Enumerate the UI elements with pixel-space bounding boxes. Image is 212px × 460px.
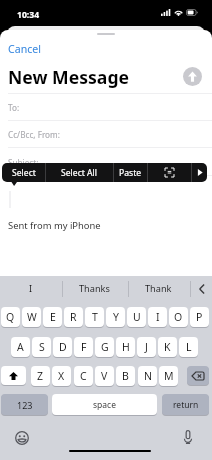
button[interactable]: Q — [1, 307, 20, 327]
staticText: Cancel — [8, 42, 41, 56]
button[interactable]: Thanks — [62, 277, 127, 299]
button[interactable]: B — [116, 366, 135, 386]
button[interactable]: T — [85, 307, 104, 327]
button[interactable]: Emoji — [13, 429, 31, 447]
button[interactable]: 123 — [1, 394, 48, 415]
staticText: X — [58, 369, 65, 383]
button[interactable]: A — [11, 337, 30, 357]
button[interactable]: Z — [31, 366, 50, 386]
staticText: Cc/Bcc, From: — [8, 129, 60, 140]
button[interactable]: S — [32, 337, 51, 357]
staticText: 123 — [17, 399, 33, 411]
staticText: U — [133, 310, 141, 324]
button[interactable]: I — [148, 307, 167, 327]
button[interactable]: V — [95, 366, 114, 386]
button[interactable]: I — [0, 277, 62, 299]
button[interactable]: C — [74, 366, 93, 386]
staticText: T — [92, 310, 98, 324]
button[interactable]: R — [64, 307, 83, 327]
staticText: Paste — [119, 167, 142, 179]
button[interactable]: F — [74, 337, 93, 357]
staticText: M — [164, 369, 174, 383]
staticText: Q — [6, 310, 15, 324]
button[interactable]: Y — [106, 307, 125, 327]
staticText: L — [186, 340, 192, 354]
button[interactable]: E — [43, 307, 62, 327]
staticText: Select All — [61, 167, 98, 179]
staticText: Subject: — [8, 157, 39, 168]
staticText: O — [174, 310, 183, 324]
staticText: New Message — [8, 65, 130, 89]
button[interactable]: K — [158, 337, 177, 357]
button[interactable]: Select — [2, 163, 45, 182]
staticText: C — [80, 369, 87, 383]
button[interactable]: N — [138, 366, 157, 386]
staticText: N — [144, 369, 152, 383]
staticText: G — [101, 340, 109, 354]
button[interactable]: Hide predictions — [191, 278, 212, 300]
button[interactable]: D — [53, 337, 72, 357]
button[interactable]: Subject: — [0, 148, 212, 176]
button[interactable]: O — [169, 307, 188, 327]
staticText: K — [164, 340, 171, 354]
staticText: I — [156, 310, 160, 324]
button[interactable]: Send — [183, 67, 202, 86]
button[interactable]: Backspace — [187, 366, 209, 385]
button[interactable]: U — [127, 307, 146, 327]
staticText: Z — [37, 369, 44, 383]
button[interactable]: W — [22, 307, 41, 327]
button[interactable]: M — [159, 366, 178, 386]
button[interactable]: To: — [0, 93, 212, 121]
button[interactable]: Dictation — [179, 428, 197, 446]
button[interactable]: Cancel — [8, 42, 41, 56]
staticText: E — [50, 310, 56, 324]
staticText: R — [70, 310, 77, 324]
button[interactable]: return — [162, 394, 209, 415]
staticText: W — [27, 310, 37, 324]
staticText: To: — [8, 102, 20, 113]
button[interactable]: H — [116, 337, 135, 357]
button[interactable]: space — [52, 394, 157, 415]
staticText: Sent from my iPhone — [8, 219, 101, 232]
button[interactable]: Scan text — [148, 163, 191, 182]
button[interactable]: Paste — [114, 163, 147, 182]
staticText: A — [17, 340, 24, 354]
button[interactable]: L — [179, 337, 198, 357]
staticText: return — [173, 399, 199, 411]
staticText: P — [196, 310, 203, 324]
staticText: D — [59, 340, 67, 354]
button[interactable]: Thank — [128, 277, 189, 299]
button[interactable]: More — [192, 163, 207, 182]
staticText: Y — [113, 310, 119, 324]
staticText: S — [39, 340, 45, 354]
button[interactable]: X — [52, 366, 71, 386]
button[interactable]: Cc/Bcc, From: — [0, 120, 212, 148]
staticText: Select — [12, 167, 36, 179]
staticText: Thanks — [79, 282, 110, 295]
staticText: V — [101, 369, 108, 383]
button[interactable]: Select All — [46, 163, 113, 182]
staticText: Thank — [145, 282, 172, 295]
staticText: B — [122, 369, 129, 383]
staticText: I — [29, 282, 33, 295]
staticText: 10:34 — [17, 9, 40, 21]
staticText: F — [81, 340, 87, 354]
button[interactable]: P — [190, 307, 209, 327]
button[interactable]: J — [137, 337, 156, 357]
button[interactable]: G — [95, 337, 114, 357]
staticText: space — [93, 399, 116, 411]
button[interactable]: Shift — [1, 366, 26, 385]
staticText: H — [122, 340, 130, 354]
staticText: J — [145, 340, 148, 354]
